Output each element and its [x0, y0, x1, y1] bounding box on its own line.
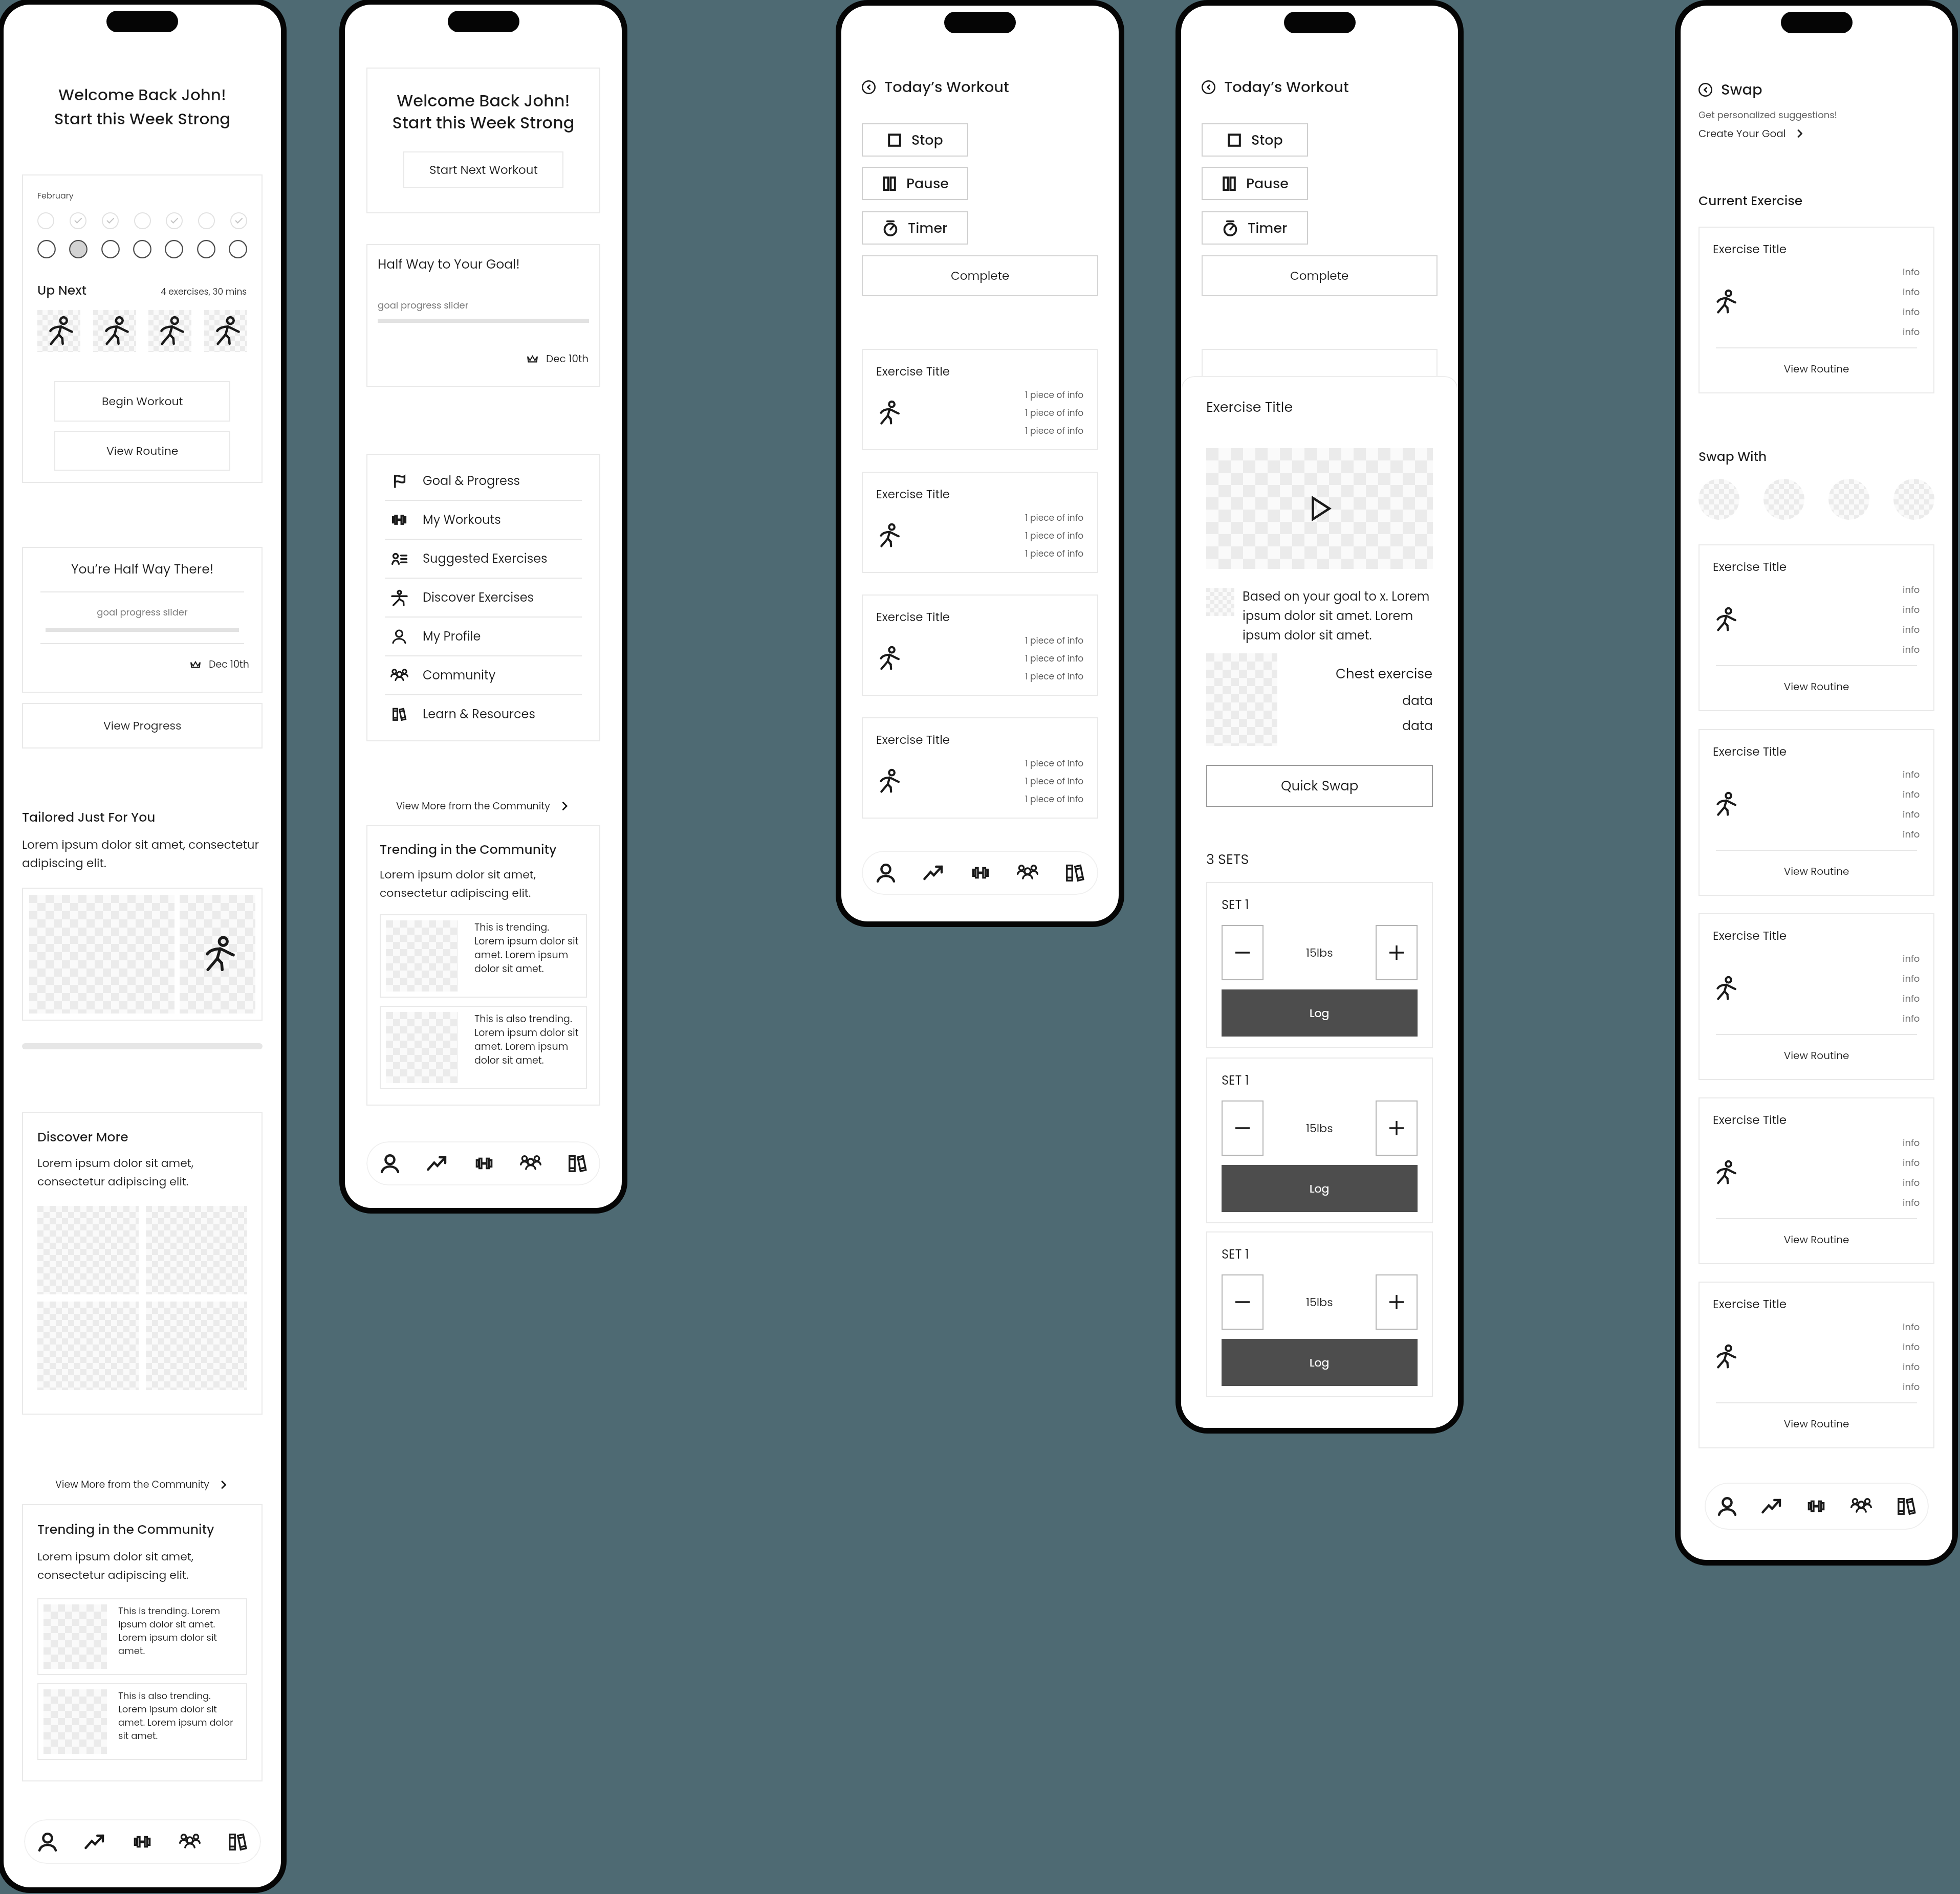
button[interactable]: Learn and resources [1884, 1483, 1929, 1530]
staticText: info [1903, 1340, 1920, 1353]
staticText: info [1903, 952, 1920, 965]
button[interactable]: Stop [1202, 123, 1308, 157]
button[interactable]: My Workouts [382, 501, 585, 539]
button[interactable]: Swap [1698, 79, 1762, 100]
button[interactable]: Alternative exercise [1893, 479, 1934, 520]
staticText: SET 1 [1222, 896, 1249, 914]
button[interactable]: Increase weight [1376, 1274, 1418, 1330]
button[interactable]: Complete [1202, 255, 1438, 296]
button[interactable]: Community [382, 656, 585, 694]
button[interactable]: View Routine [1713, 679, 1920, 694]
button[interactable]: Log [1222, 989, 1418, 1037]
button[interactable]: Progress [71, 1819, 118, 1864]
button[interactable]: Alternative exercise [1698, 479, 1739, 520]
button[interactable]: Complete [862, 255, 1098, 296]
staticText: Chest exercise [1336, 665, 1433, 683]
button[interactable]: Suggested Exercises [382, 540, 585, 578]
staticText: info [1903, 285, 1920, 298]
staticText: 1 piece of info [1025, 407, 1084, 419]
button[interactable]: Progress [909, 851, 957, 895]
button[interactable]: View Routine [1713, 864, 1920, 878]
staticText: info [1903, 1380, 1920, 1393]
button[interactable]: Log [1222, 1165, 1418, 1212]
staticText: Lorem ipsum dolor sit amet, consectetur … [37, 1549, 194, 1583]
button[interactable]: View Routine [1713, 1417, 1920, 1431]
staticText: Up Next [37, 281, 86, 299]
staticText: 1 piece of info [1025, 757, 1084, 769]
staticText: 1 piece of info [1025, 512, 1084, 524]
button[interactable]: Timer [1202, 211, 1308, 245]
button[interactable]: View More from the Community [366, 799, 600, 813]
button[interactable]: Workouts [957, 851, 1004, 895]
button[interactable]: View Routine [54, 431, 230, 471]
staticText: info [1903, 828, 1920, 841]
button[interactable]: View Routine [1713, 362, 1920, 376]
staticText: info [1903, 623, 1920, 636]
button[interactable]: Quick Swap [1206, 765, 1433, 807]
staticText: 1 piece of info [1025, 425, 1084, 437]
staticText: Exercise Title [876, 609, 950, 625]
button[interactable]: Community [507, 1141, 554, 1185]
button[interactable]: Goal & Progress [382, 462, 585, 500]
button[interactable]: Timer [862, 211, 968, 245]
button[interactable]: Learn and resources [213, 1819, 261, 1864]
button[interactable]: Decrease weight [1222, 925, 1264, 980]
button[interactable]: Alternative exercise [1828, 479, 1869, 520]
button[interactable]: Increase weight [1376, 1100, 1418, 1156]
button[interactable]: Learn & Resources [382, 695, 585, 733]
button[interactable]: Learn and resources [1051, 851, 1098, 895]
button[interactable]: Profile [24, 1819, 71, 1864]
button[interactable]: Decrease weight [1222, 1100, 1264, 1156]
staticText: Complete [951, 268, 1010, 284]
staticText: Exercise Title [1206, 398, 1293, 417]
button[interactable]: Today’s Workout [862, 77, 1009, 98]
button[interactable]: Workouts [118, 1819, 166, 1864]
button[interactable]: Alternative exercise [1763, 479, 1804, 520]
button[interactable]: Profile [366, 1141, 413, 1185]
button[interactable]: Discover Exercises [382, 579, 585, 616]
button[interactable]: Decrease weight [1222, 1274, 1264, 1330]
staticText: Trending in the Community [380, 841, 557, 858]
button[interactable]: View Progress [22, 703, 263, 748]
button[interactable]: Workouts [461, 1141, 507, 1185]
staticText: 15lbs [1306, 1294, 1333, 1310]
button[interactable]: Create Your Goal [1698, 126, 1805, 141]
staticText: View More from the Community [55, 1478, 210, 1491]
button[interactable]: My Profile [382, 618, 585, 655]
button[interactable]: Learn and resources [554, 1141, 600, 1185]
button[interactable]: Pause [862, 167, 968, 200]
staticText: 1 piece of info [1025, 793, 1084, 805]
staticText: info [1903, 1136, 1920, 1149]
staticText: Stop [911, 130, 943, 150]
staticText: info [1903, 325, 1920, 338]
button[interactable]: Pause [1202, 167, 1308, 200]
button[interactable]: Progress [1749, 1483, 1794, 1530]
staticText: Start Next Workout [429, 162, 538, 178]
button[interactable]: Progress [413, 1141, 461, 1185]
button[interactable]: Profile [862, 851, 909, 895]
button[interactable]: Increase weight [1376, 925, 1418, 980]
button[interactable]: Start Next Workout [403, 151, 563, 188]
staticText: info [1903, 1196, 1920, 1209]
button[interactable]: Profile [1705, 1483, 1749, 1530]
button[interactable]: View Routine [1713, 1232, 1920, 1247]
staticText: Current Exercise [1698, 192, 1803, 210]
staticText: info [1903, 603, 1920, 616]
staticText: info [1903, 972, 1920, 985]
button[interactable]: View Routine [1713, 1048, 1920, 1063]
staticText: info [1903, 266, 1920, 278]
staticText: data [1402, 717, 1433, 735]
button[interactable]: Begin Workout [54, 381, 230, 422]
button[interactable]: Log [1222, 1339, 1418, 1386]
button[interactable]: Workouts [1794, 1483, 1839, 1530]
button[interactable]: Today’s Workout [1202, 77, 1349, 98]
staticText: Community [423, 667, 496, 684]
staticText: Exercise Title [1713, 241, 1787, 257]
button[interactable]: Stop [862, 123, 968, 157]
button[interactable]: Community [1839, 1483, 1884, 1530]
staticText: info [1903, 992, 1920, 1005]
button[interactable]: View More from the Community [22, 1478, 263, 1491]
button[interactable]: Community [1004, 851, 1051, 895]
staticText: SET 1 [1222, 1246, 1249, 1263]
button[interactable]: Community [166, 1819, 213, 1864]
